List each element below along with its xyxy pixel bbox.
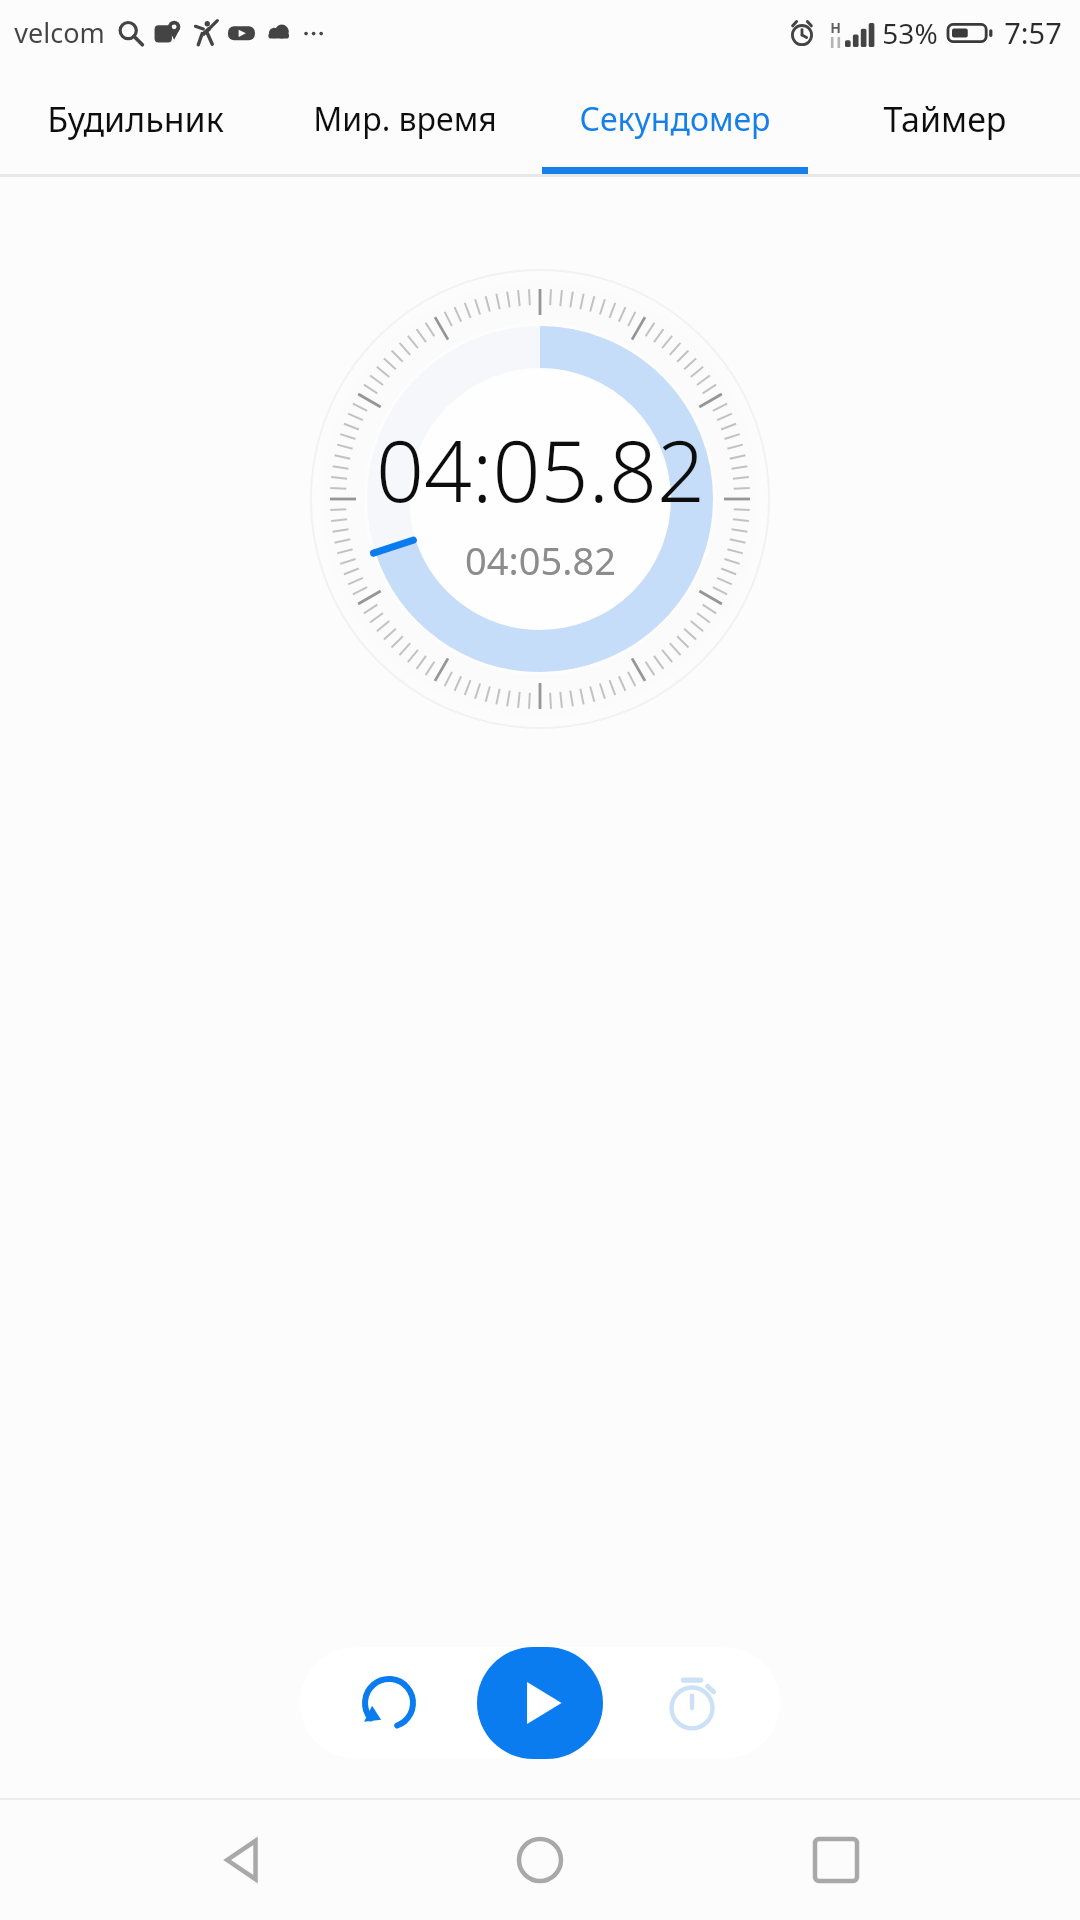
button[interactable]: Recents bbox=[784, 1808, 888, 1912]
button[interactable]: Lap bbox=[643, 1654, 741, 1752]
staticText: Секундомер bbox=[579, 97, 771, 141]
staticText: H bbox=[830, 18, 841, 37]
staticText: 04:05.82 bbox=[376, 412, 705, 526]
staticText: Таймер bbox=[883, 96, 1007, 142]
staticText: 7:57 bbox=[1004, 13, 1062, 52]
staticText: Будильник bbox=[47, 96, 224, 142]
button[interactable]: Reset bbox=[340, 1654, 438, 1752]
staticText: 04:05.82 bbox=[465, 534, 616, 586]
button[interactable]: Мир. время bbox=[270, 97, 540, 141]
staticText: 53% bbox=[882, 14, 938, 52]
button[interactable]: Таймер bbox=[810, 96, 1080, 142]
button[interactable]: Будильник bbox=[0, 96, 270, 142]
button[interactable]: Секундомер bbox=[540, 97, 810, 141]
button[interactable]: Home bbox=[488, 1808, 592, 1912]
staticText: velcom bbox=[14, 14, 105, 51]
button[interactable]: Back bbox=[192, 1808, 296, 1912]
button[interactable]: Start bbox=[477, 1647, 603, 1759]
staticText: Мир. время bbox=[313, 97, 497, 141]
